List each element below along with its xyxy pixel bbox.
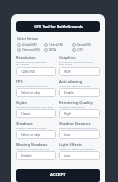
button[interactable]: Select or skip	[16, 88, 56, 97]
staticText: Light Effects	[59, 142, 82, 147]
staticText: 1280x700	[21, 70, 36, 74]
staticText: Select or skip	[21, 91, 41, 95]
button[interactable]: Select or skip	[16, 130, 56, 139]
button[interactable]: LITE	[72, 48, 100, 52]
staticText: Choose your favorite color filter	[16, 105, 54, 108]
staticText: GFX Tool for BattleGrounds	[34, 24, 83, 29]
staticText: Select Version	[17, 37, 39, 41]
button[interactable]: Global(KR)	[17, 43, 44, 47]
staticText: ACCEPT	[50, 172, 66, 178]
staticText: Choose the best graphics for your device	[59, 60, 93, 66]
staticText: Global(KR)	[22, 43, 37, 47]
staticText: Vietnam(VN)	[22, 48, 40, 52]
button[interactable]: GFX Tool for BattleGrounds	[16, 21, 100, 32]
staticText: BETA	[49, 48, 56, 52]
button[interactable]: Light Effects	[59, 142, 100, 160]
button[interactable]: Anti-aliasing	[59, 79, 100, 97]
staticText: Graphics	[59, 55, 76, 60]
button[interactable]: High	[59, 109, 100, 118]
button[interactable]: Korea(KR)	[72, 43, 100, 47]
button[interactable]: Low	[59, 151, 100, 160]
staticText: Anti-aliasing	[59, 79, 83, 84]
staticText: Rendering Quality	[59, 100, 93, 105]
staticText: Classic	[21, 112, 31, 116]
button[interactable]: Disable	[16, 151, 56, 160]
staticText: LITE	[77, 48, 83, 52]
staticText: China(CN)	[49, 43, 64, 47]
button[interactable]: China(CN)	[44, 43, 72, 47]
button[interactable]: Styles	[16, 100, 56, 118]
staticText: HDR	[64, 70, 71, 74]
button[interactable]: HDR	[59, 67, 100, 76]
staticText: FPS	[16, 79, 23, 84]
staticText: Enable for better performance	[59, 147, 95, 150]
staticText: Set the optimal resolution for a game	[16, 60, 47, 66]
button[interactable]: 1280x700	[16, 67, 56, 76]
button[interactable]: Low	[59, 130, 100, 139]
staticText: Moving Shadows	[16, 142, 48, 147]
staticText: Shadows	[16, 121, 33, 126]
staticText: Shadows, textures etc	[59, 105, 85, 108]
button[interactable]: Enable	[59, 88, 100, 97]
staticText: Unlock maximum FPS limit	[16, 84, 48, 87]
staticText: Shadows of players and cars	[16, 147, 50, 150]
staticText: Shadow Distance	[59, 121, 91, 126]
button[interactable]: ACCEPT	[16, 169, 100, 182]
staticText: Select the shadow distance level	[59, 126, 97, 129]
button[interactable]: Vietnam(VN)	[17, 48, 44, 52]
button[interactable]: FPS	[16, 79, 56, 97]
button[interactable]: Shadow Distance	[59, 121, 100, 139]
staticText: Disable	[21, 154, 32, 158]
button[interactable]: Classic	[16, 109, 56, 118]
button[interactable]: BETA	[44, 48, 72, 52]
staticText: High	[64, 112, 71, 116]
button[interactable]: Shadows	[16, 121, 56, 139]
staticText: Korea(KR)	[77, 43, 91, 47]
button[interactable]: Resolution	[16, 55, 56, 76]
staticText: Low	[64, 154, 70, 158]
staticText: Styles	[16, 100, 27, 105]
staticText: Resolution	[16, 55, 36, 60]
staticText: Makes the textures smooth	[59, 84, 92, 87]
staticText: Select or skip	[21, 133, 41, 137]
button[interactable]: Rendering Quality	[59, 100, 100, 118]
button[interactable]: Graphics	[59, 55, 100, 76]
button[interactable]: Moving Shadows	[16, 142, 56, 160]
staticText: Enable or disable shadows	[16, 126, 48, 129]
staticText: Low	[64, 133, 70, 137]
staticText: Enable	[64, 91, 74, 95]
